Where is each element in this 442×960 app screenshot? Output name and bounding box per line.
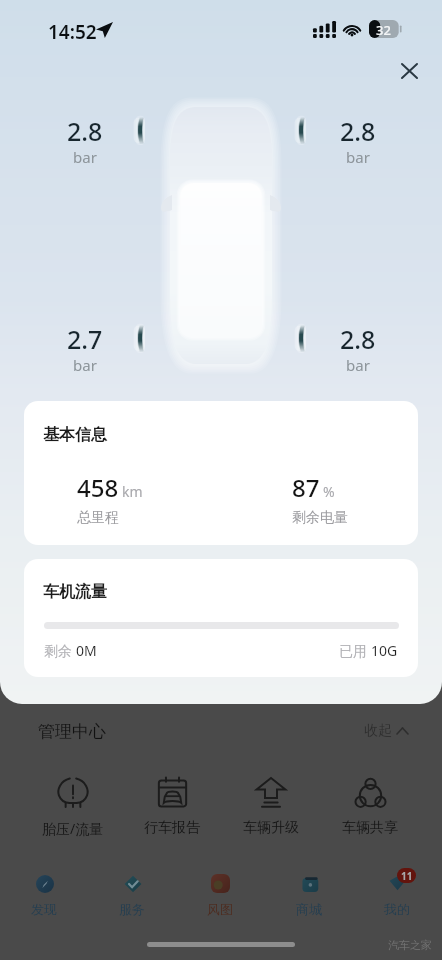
staticText: bar (346, 147, 370, 167)
staticText: 风图 (207, 901, 233, 917)
staticText: 发现 (31, 901, 57, 917)
staticText: 2.7 (67, 322, 103, 356)
staticText: 11 (401, 869, 413, 883)
button[interactable]: Close (392, 54, 426, 88)
button[interactable]: 车辆共享 (320, 775, 419, 837)
button[interactable]: 车机流量 (24, 559, 418, 677)
staticText: km (122, 482, 143, 501)
button[interactable]: 行车报告 (122, 775, 221, 837)
staticText: 行车报告 (144, 819, 200, 837)
staticText: 458 (77, 471, 119, 504)
staticText: bar (346, 355, 370, 375)
staticText: 车辆共享 (342, 819, 398, 837)
staticText: 收起 (364, 722, 392, 740)
staticText: 87 (292, 471, 320, 504)
staticText: 商城 (296, 901, 322, 917)
button[interactable]: 胎压/流量 (23, 775, 122, 838)
staticText: 汽车之家 (388, 938, 432, 952)
button[interactable]: 服务 (88, 874, 176, 917)
staticText: 服务 (119, 901, 145, 917)
button[interactable]: 11 (353, 874, 441, 917)
staticText: 剩余 (44, 641, 76, 660)
staticText: 我的 (384, 901, 410, 917)
staticText: 10G (371, 641, 398, 660)
staticText: 32 (376, 21, 391, 39)
staticText: 剩余电量 (292, 509, 348, 527)
button[interactable]: 发现 (0, 874, 88, 917)
staticText: 已用 (339, 641, 371, 660)
button[interactable]: 收起 (360, 718, 412, 744)
staticText: 2.8 (340, 114, 376, 148)
staticText: 2.8 (67, 114, 103, 148)
staticText: 基本信息 (43, 425, 107, 445)
staticText: 车机流量 (43, 582, 107, 602)
button[interactable]: 风图 (176, 874, 264, 917)
staticText: bar (73, 147, 97, 167)
button[interactable]: 商城 (265, 874, 353, 917)
staticText: 14:52 (48, 19, 97, 45)
button[interactable]: 基本信息 (24, 401, 418, 545)
staticText: 2.8 (340, 322, 376, 356)
staticText: 总里程 (77, 509, 119, 527)
staticText: 车辆升级 (243, 819, 299, 837)
staticText: 0M (76, 641, 97, 660)
staticText: 管理中心 (38, 721, 106, 742)
staticText: % (323, 482, 335, 501)
staticText: 胎压/流量 (42, 819, 104, 838)
staticText: bar (73, 355, 97, 375)
button[interactable]: 车辆升级 (221, 775, 320, 837)
